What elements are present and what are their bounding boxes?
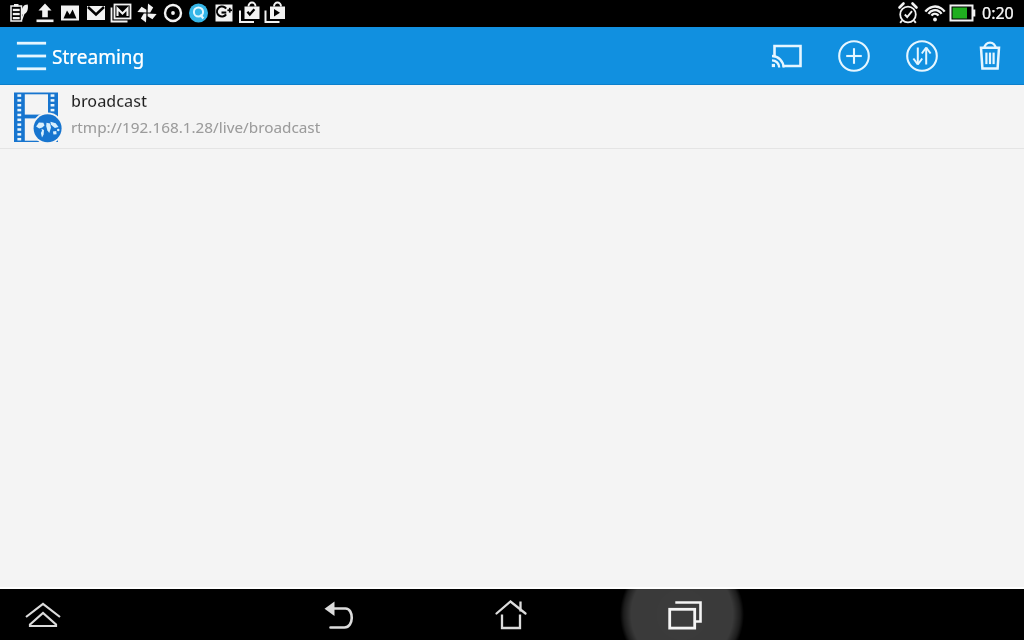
button[interactable]: Delete: [956, 27, 1024, 85]
button[interactable]: broadcast: [0, 85, 1024, 148]
staticText: Streaming: [52, 44, 145, 70]
staticText: 0:20: [982, 2, 1014, 24]
button[interactable]: Recent apps: [3, 588, 83, 640]
staticText: broadcast: [71, 90, 148, 112]
button[interactable]: Home: [471, 588, 551, 640]
button[interactable]: Sort: [888, 27, 956, 85]
button[interactable]: Cast: [752, 27, 820, 85]
button[interactable]: Open navigation drawer: [0, 27, 50, 85]
button[interactable]: Back: [299, 588, 379, 640]
button[interactable]: Overview: [645, 588, 725, 640]
button[interactable]: Add stream: [820, 27, 888, 85]
staticText: rtmp://192.168.1.28/live/broadcast: [71, 117, 321, 138]
